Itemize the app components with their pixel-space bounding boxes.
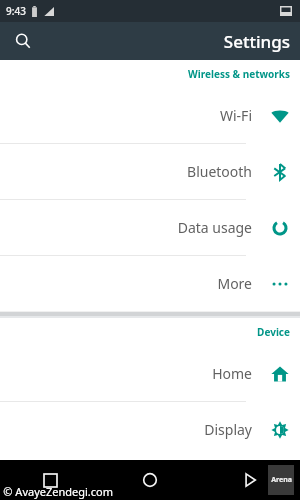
staticText: More	[217, 274, 252, 293]
button[interactable]: Data usage	[0, 200, 300, 256]
button[interactable]: Bluetooth	[0, 144, 300, 200]
staticText: Bluetooth	[187, 162, 252, 181]
staticText: Arena	[271, 475, 292, 485]
staticText: Wireless & networks	[188, 67, 290, 81]
button[interactable]: Search	[8, 26, 38, 56]
staticText: Display	[204, 420, 252, 439]
staticText: Home	[212, 364, 252, 383]
button[interactable]: Back	[200, 460, 300, 500]
button[interactable]: Home	[100, 460, 200, 500]
button[interactable]: Home	[0, 346, 300, 402]
staticText: Device	[257, 325, 290, 339]
staticText: 9:43	[6, 4, 26, 18]
staticText: Wi-Fi	[219, 106, 252, 125]
staticText: © AvayeZendegi.com	[3, 484, 113, 499]
button[interactable]: Recent apps	[0, 460, 100, 500]
button[interactable]: More	[0, 256, 300, 311]
staticText: Data usage	[177, 218, 252, 237]
button[interactable]: Wi-Fi	[0, 88, 300, 144]
staticText: Settings	[223, 30, 290, 53]
button[interactable]: Display	[0, 402, 300, 457]
